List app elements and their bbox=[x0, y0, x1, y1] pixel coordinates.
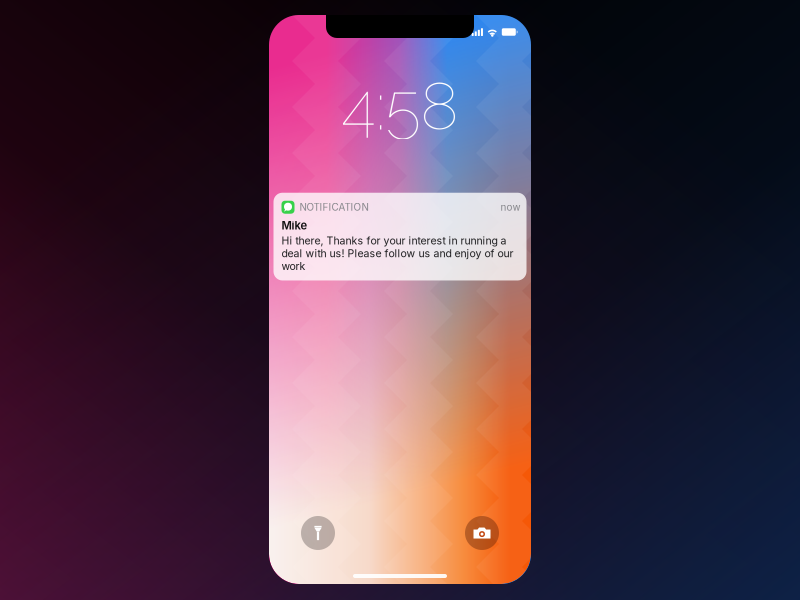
button[interactable]: Camera bbox=[465, 516, 499, 550]
button[interactable]: Flashlight bbox=[301, 516, 335, 550]
staticText: 4:58 bbox=[341, 68, 458, 145]
button[interactable]: NOTIFICATION bbox=[273, 193, 526, 280]
staticText: Mike bbox=[281, 219, 307, 232]
staticText: Hi there, Thanks for your interest in ru… bbox=[281, 234, 513, 272]
staticText: NOTIFICATION bbox=[299, 201, 368, 213]
staticText: now bbox=[500, 201, 520, 213]
